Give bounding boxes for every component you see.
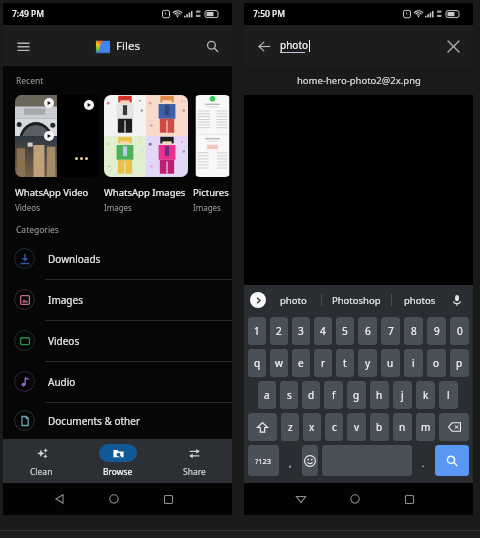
button[interactable]: 1 xyxy=(248,317,266,345)
staticText: t xyxy=(343,356,347,370)
button[interactable]: q xyxy=(248,349,266,377)
button[interactable]: n xyxy=(393,413,412,441)
button[interactable]: Back xyxy=(252,34,276,58)
staticText: . xyxy=(422,457,425,469)
staticText: h xyxy=(376,388,383,402)
button[interactable]: x xyxy=(303,413,321,441)
button[interactable]: 5 xyxy=(336,317,354,345)
button[interactable]: Back xyxy=(288,486,314,512)
button[interactable]: 9 xyxy=(427,317,446,345)
staticText: Recent xyxy=(16,75,44,87)
button[interactable]: Menu xyxy=(11,34,35,58)
staticText: 7 xyxy=(388,324,394,338)
button[interactable]: a xyxy=(258,381,276,409)
button[interactable]: photos xyxy=(392,285,447,315)
button[interactable]: home-hero-photo2@2x.png xyxy=(244,66,473,95)
button[interactable]: . xyxy=(416,445,431,476)
button[interactable]: Shift xyxy=(248,413,277,441)
button[interactable]: 8 xyxy=(404,317,423,345)
button[interactable]: Photoshop xyxy=(322,285,391,315)
button[interactable]: s xyxy=(280,381,298,409)
button[interactable]: f xyxy=(324,381,343,409)
staticText: q xyxy=(254,356,261,370)
button[interactable]: v xyxy=(347,413,366,441)
staticText: Photoshop xyxy=(332,294,381,307)
button[interactable]: 6 xyxy=(358,317,377,345)
staticText: WhatsApp Video xyxy=(15,186,89,199)
staticText: e xyxy=(298,356,304,370)
staticText: r xyxy=(321,356,326,370)
button[interactable]: 2 xyxy=(270,317,288,345)
staticText: Audio xyxy=(48,375,76,389)
button[interactable]: 7 xyxy=(381,317,400,345)
button[interactable]: b xyxy=(370,413,389,441)
staticText: Videos xyxy=(48,334,80,348)
button[interactable]: e xyxy=(292,349,310,377)
staticText: k xyxy=(423,388,429,402)
button[interactable]: d xyxy=(302,381,320,409)
staticText: Browse xyxy=(103,466,133,478)
button[interactable]: Backspace xyxy=(439,413,469,441)
button[interactable]: Back xyxy=(47,486,73,512)
button[interactable]: t xyxy=(336,349,354,377)
button[interactable]: u xyxy=(381,349,400,377)
staticText: WhatsApp Images xyxy=(104,186,186,199)
button[interactable]: More suggestions xyxy=(250,292,266,308)
staticText: photo xyxy=(280,38,309,52)
button[interactable]: Voice input xyxy=(447,290,467,310)
staticText: i xyxy=(412,356,415,370)
button[interactable]: photo xyxy=(266,285,321,315)
button[interactable]: Home xyxy=(342,486,368,512)
staticText: d xyxy=(308,388,315,402)
button[interactable]: Emoji xyxy=(302,445,318,476)
button[interactable]: y xyxy=(358,349,377,377)
button[interactable]: Search xyxy=(435,445,469,476)
staticText: Images xyxy=(104,202,132,213)
staticText: photo xyxy=(280,294,307,307)
button[interactable]: Search xyxy=(200,34,224,58)
staticText: b xyxy=(376,420,383,434)
button[interactable]: 0 xyxy=(450,317,469,345)
button[interactable]: g xyxy=(347,381,366,409)
button[interactable]: p xyxy=(450,349,469,377)
staticText: 9 xyxy=(434,324,440,338)
button[interactable]: Audio xyxy=(3,361,232,402)
button[interactable]: Share xyxy=(156,439,232,483)
button[interactable]: Downloads xyxy=(3,238,232,279)
button[interactable]: Images xyxy=(3,279,232,320)
button[interactable]: c xyxy=(325,413,343,441)
button[interactable] xyxy=(15,95,99,177)
button[interactable]: Recents xyxy=(396,486,422,512)
button[interactable]: j xyxy=(393,381,412,409)
button[interactable]: w xyxy=(270,349,288,377)
button[interactable]: o xyxy=(427,349,446,377)
button[interactable]: Browse xyxy=(80,439,156,483)
button[interactable]: i xyxy=(404,349,423,377)
button[interactable] xyxy=(193,95,232,177)
button[interactable]: m xyxy=(416,413,435,441)
button[interactable]: Videos xyxy=(3,320,232,361)
button[interactable]: l xyxy=(439,381,458,409)
staticText: l xyxy=(447,388,450,402)
button[interactable]: , xyxy=(283,445,298,476)
button[interactable]: Clear search xyxy=(441,34,465,58)
staticText: j xyxy=(401,388,404,402)
staticText: ?123 xyxy=(255,456,272,466)
staticText: Clean xyxy=(30,466,53,478)
staticText: Documents & other xyxy=(48,414,141,428)
staticText: z xyxy=(288,420,293,434)
button[interactable] xyxy=(104,95,188,177)
button[interactable]: 3 xyxy=(292,317,310,345)
button[interactable]: Home xyxy=(101,486,127,512)
button[interactable]: z xyxy=(281,413,299,441)
button[interactable]: r xyxy=(314,349,332,377)
button[interactable]: Documents & other xyxy=(3,402,232,439)
staticText: 0 xyxy=(457,324,463,338)
button[interactable]: h xyxy=(370,381,389,409)
button[interactable]: Clean xyxy=(3,439,80,483)
button[interactable]: 4 xyxy=(314,317,332,345)
button[interactable]: Recents xyxy=(155,486,181,512)
button[interactable]: ?123 xyxy=(248,445,279,476)
button[interactable]: k xyxy=(416,381,435,409)
